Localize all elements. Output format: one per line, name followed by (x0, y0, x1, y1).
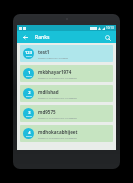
button[interactable]: 2 (20, 85, 113, 102)
staticText: points (26, 95, 32, 98)
button[interactable]: Search (103, 33, 112, 42)
staticText: test1 (38, 49, 50, 55)
staticText: md9575 (38, 109, 56, 115)
staticText: mkbhayar1974 (38, 69, 72, 75)
staticText: CORPUS AND BRANDS NUMBERS (38, 76, 77, 79)
button[interactable]: 4 (20, 125, 113, 142)
staticText: CORPUS AND BRANDS NUMBERS (38, 116, 77, 119)
staticText: mdhokar.abhijeet (38, 129, 78, 135)
staticText: points (26, 55, 32, 58)
staticText: mdilshad (38, 89, 59, 95)
staticText: 2 (28, 90, 31, 95)
staticText: points (26, 75, 32, 78)
staticText: points (26, 115, 32, 118)
staticText: CORPUS BRAND NUMBER (38, 56, 69, 59)
staticText: 3 (28, 110, 31, 115)
button[interactable]: Back (21, 33, 30, 42)
staticText: CORPUS AND BRANDS NUMBERS (38, 136, 77, 139)
staticText: points (26, 135, 32, 138)
button[interactable]: 3 (20, 105, 113, 122)
button[interactable]: 123 (20, 45, 113, 62)
staticText: 1 (28, 70, 31, 75)
staticText: 10:13 (106, 26, 114, 30)
staticText: 123 (25, 50, 32, 55)
staticText: Ranks (35, 34, 50, 41)
staticText: 4 (28, 130, 31, 135)
staticText: CORPUS AND BRANDS NUMBERS (38, 96, 77, 99)
button[interactable]: 1 (20, 65, 113, 82)
